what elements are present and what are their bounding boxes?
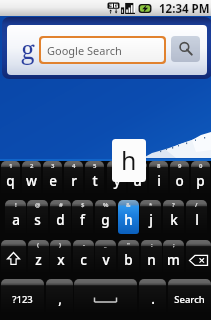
button[interactable]: Search: [168, 279, 211, 313]
button[interactable]: @: [27, 200, 48, 234]
staticText: y: [113, 172, 121, 190]
staticText: l: [195, 211, 199, 229]
button[interactable]: Backspace: [186, 240, 211, 273]
button[interactable]: 5: [85, 161, 104, 194]
button[interactable]: (: [28, 240, 49, 273]
button[interactable]: Search: [171, 36, 200, 62]
staticText: i: [157, 172, 161, 190]
button[interactable]: /: [186, 200, 207, 234]
button[interactable]: .: [139, 279, 166, 313]
button[interactable]: 0: [191, 161, 210, 194]
button[interactable]: #: [50, 200, 71, 234]
staticText: Search: [174, 293, 205, 306]
staticText: ): [59, 241, 62, 249]
staticText: .: [151, 290, 155, 308]
button[interactable]: ,: [46, 279, 73, 313]
staticText: z: [35, 251, 42, 269]
staticText: ?123: [12, 293, 33, 306]
staticText: e: [49, 172, 57, 190]
staticText: b: [124, 251, 133, 269]
button[interactable]: [7, 25, 207, 75]
staticText: q: [6, 172, 15, 190]
button[interactable]: 2: [22, 161, 41, 194]
button[interactable]: ;: [163, 240, 184, 273]
button[interactable]: ): [50, 240, 71, 273]
staticText: o: [175, 172, 184, 190]
staticText: /: [195, 201, 198, 209]
button[interactable]: 1: [1, 161, 20, 194]
staticText: c: [80, 251, 87, 269]
staticText: 1: [9, 162, 13, 170]
staticText: $: [81, 201, 85, 209]
staticText: ;: [173, 241, 175, 249]
staticText: r: [71, 172, 77, 190]
staticText: *: [149, 201, 153, 209]
button[interactable]: :: [141, 240, 162, 273]
staticText: :: [151, 241, 153, 249]
staticText: m: [167, 251, 180, 269]
staticText: a: [12, 211, 20, 229]
staticText: g: [101, 211, 110, 229]
staticText: &: [126, 201, 131, 209]
button[interactable]: 3: [43, 161, 62, 194]
staticText: f: [80, 211, 85, 229]
staticText: k: [170, 211, 178, 229]
button[interactable]: ?123: [1, 279, 44, 313]
staticText: ,: [58, 290, 62, 308]
button[interactable]: -: [73, 240, 94, 273]
staticText: v: [102, 251, 110, 269]
button[interactable]: 4: [64, 161, 83, 194]
staticText: -: [83, 241, 85, 249]
button[interactable]: $: [72, 200, 93, 234]
button[interactable]: *: [140, 200, 161, 234]
button[interactable]: Shift: [1, 240, 26, 273]
staticText: x: [57, 251, 65, 269]
staticText: j: [149, 211, 153, 229]
staticText: h: [121, 143, 137, 177]
staticText: p: [196, 172, 205, 190]
staticText: ": [127, 241, 130, 249]
staticText: %: [103, 201, 109, 209]
staticText: _: [104, 241, 107, 249]
staticText: 8: [157, 162, 161, 170]
staticText: h: [124, 211, 133, 229]
button[interactable]: 6: [107, 161, 126, 194]
staticText: u: [133, 172, 142, 190]
staticText: (: [37, 241, 40, 249]
staticText: s: [34, 211, 41, 229]
button[interactable]: 9: [170, 161, 189, 194]
staticText: g: [21, 31, 35, 66]
button[interactable]: &: [118, 200, 139, 234]
staticText: @: [35, 201, 41, 209]
button[interactable]: Space: [74, 279, 137, 313]
staticText: w: [26, 172, 37, 190]
staticText: #: [59, 201, 63, 209]
staticText: 0: [199, 162, 203, 170]
button[interactable]: %: [95, 200, 116, 234]
staticText: 12:34 PM: [159, 1, 210, 17]
staticText: 3: [51, 162, 55, 170]
button[interactable]: !: [5, 200, 26, 234]
staticText: 2: [30, 162, 34, 170]
button[interactable]: 8: [149, 161, 168, 194]
staticText: 4: [72, 162, 76, 170]
staticText: 5: [93, 162, 97, 170]
button[interactable]: ?: [163, 200, 184, 234]
staticText: n: [147, 251, 156, 269]
button[interactable]: Google Search: [41, 38, 164, 62]
button[interactable]: _: [95, 240, 116, 273]
staticText: t: [92, 172, 98, 190]
button[interactable]: ": [118, 240, 139, 273]
staticText: d: [56, 211, 65, 229]
button[interactable]: 7: [128, 161, 147, 194]
staticText: !: [15, 201, 17, 209]
staticText: 9: [178, 162, 182, 170]
staticText: ?: [172, 201, 175, 209]
staticText: Google Search: [47, 43, 122, 58]
